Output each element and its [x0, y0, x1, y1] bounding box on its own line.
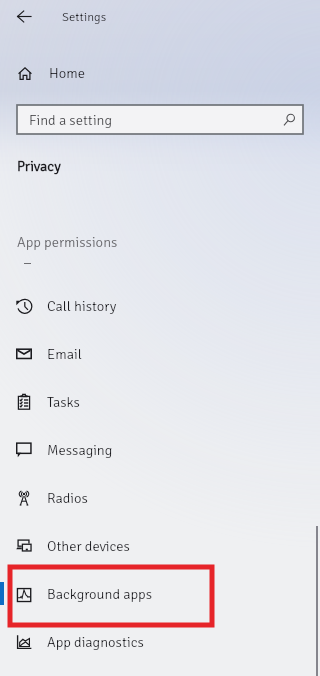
- button[interactable]: App diagnostics: [0, 618, 320, 666]
- staticText: App diagnostics: [47, 633, 144, 651]
- staticText: Radios: [47, 489, 88, 507]
- button[interactable]: Call history: [0, 282, 320, 330]
- staticText: Home: [49, 64, 85, 82]
- staticText: Background apps: [47, 585, 153, 603]
- button[interactable]: Radios: [0, 474, 320, 522]
- staticText: Other devices: [47, 537, 130, 555]
- staticText: App permissions: [17, 233, 118, 251]
- button[interactable]: Find a setting: [17, 105, 303, 134]
- button[interactable]: Back: [2, 4, 46, 28]
- button[interactable]: Messaging: [0, 426, 320, 474]
- staticText: Call history: [47, 297, 117, 315]
- staticText: Email: [47, 345, 82, 363]
- button[interactable]: Tasks: [0, 378, 320, 426]
- staticText: Find a setting: [29, 111, 113, 129]
- staticText: Messaging: [47, 441, 113, 459]
- button[interactable]: Home: [0, 60, 320, 86]
- button[interactable]: Other devices: [0, 522, 320, 570]
- button[interactable]: Email: [0, 330, 320, 378]
- staticText: Privacy: [17, 157, 61, 175]
- button[interactable]: Background apps: [0, 570, 320, 618]
- staticText: Tasks: [47, 393, 80, 411]
- staticText: Settings: [62, 9, 107, 25]
